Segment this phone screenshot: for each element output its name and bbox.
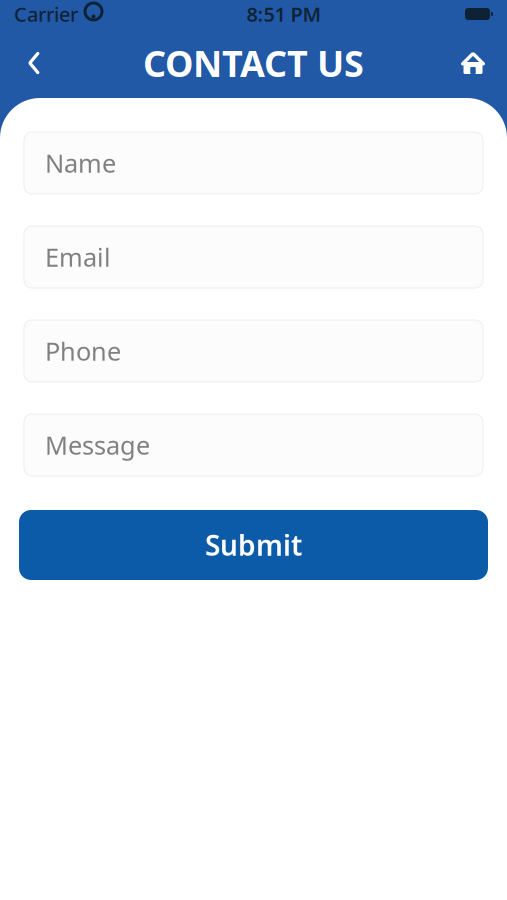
staticText: Phone <box>45 334 121 368</box>
button[interactable]: Submit <box>19 510 488 580</box>
staticText: Name <box>45 146 116 180</box>
button[interactable]: Back <box>8 37 60 89</box>
staticText: Submit <box>205 526 302 564</box>
button[interactable]: Home <box>447 37 499 89</box>
staticText: 8:51 PM <box>246 1 321 27</box>
staticText: CONTACT US <box>143 39 364 87</box>
staticText: Email <box>45 240 111 274</box>
staticText: Message <box>45 428 150 462</box>
staticText: Carrier <box>14 1 78 27</box>
